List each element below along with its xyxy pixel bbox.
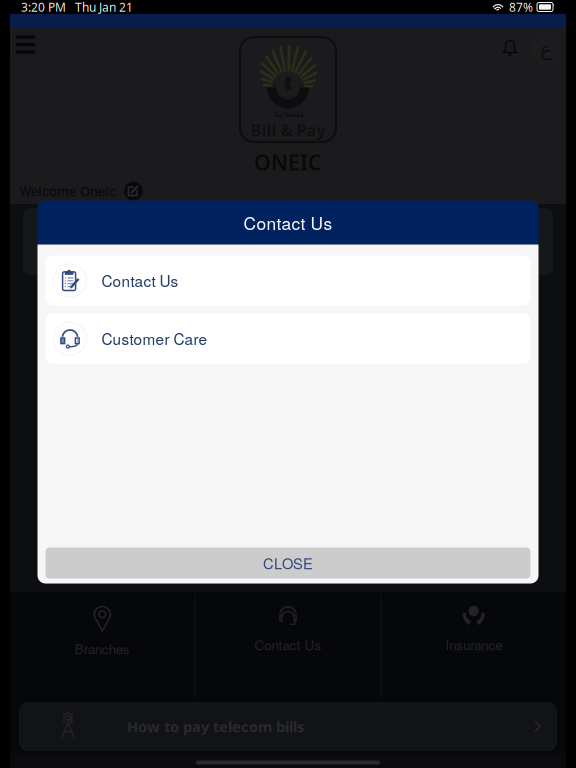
staticText: Contact Us [254,635,321,654]
staticText: تسديد [272,107,303,119]
staticText: Insurance [445,635,502,654]
button[interactable]: How to pay telecom bills [19,702,557,751]
button[interactable]: Customer Care [45,313,530,363]
staticText: Welcome Oneic [19,181,116,201]
staticText: 3:20 PM [21,0,66,15]
button[interactable]: CLOSE [45,547,530,578]
staticText: Customer Care [101,327,207,349]
staticText: How to pay telecom bills [127,717,304,736]
button[interactable]: Branches [10,592,195,700]
staticText: Contact Us [101,269,178,291]
staticText: ع [539,37,551,60]
staticText: Thu Jan 21 [75,0,133,15]
staticText: Contact Us [243,210,332,235]
staticText: 87% [509,0,533,15]
button[interactable]: Notifications [501,38,519,57]
staticText: ONEIC [254,148,322,176]
staticText: Branches [75,639,130,658]
staticText: CLOSE [263,552,313,573]
button[interactable]: Contact Us [45,255,530,305]
button[interactable]: Insurance [381,592,566,700]
button[interactable]: Arabic [530,33,561,64]
staticText: Bill & Pay [250,119,325,141]
button[interactable]: Edit profile [124,181,143,200]
button[interactable]: Menu [16,36,35,53]
